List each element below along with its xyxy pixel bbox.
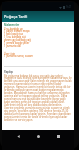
staticText: 3 su bardağı un 1 paket instant maya 1 t…	[4, 27, 31, 48]
staticText: Malzemeler	[4, 23, 20, 27]
staticText: Yapılışı	[4, 70, 14, 74]
button[interactable]: Home	[35, 133, 41, 139]
staticText: Bir yoğurma kabına ılık suyu, sıvı yağı,…	[4, 74, 72, 122]
button[interactable]: Back	[15, 133, 21, 139]
button[interactable]: Recent apps	[55, 133, 61, 139]
staticText: 9:41	[66, 5, 72, 9]
staticText: Poğaça Tarifi	[4, 14, 28, 19]
staticText: Üzeri için 1 yumurta sarısı, susam	[4, 52, 33, 58]
